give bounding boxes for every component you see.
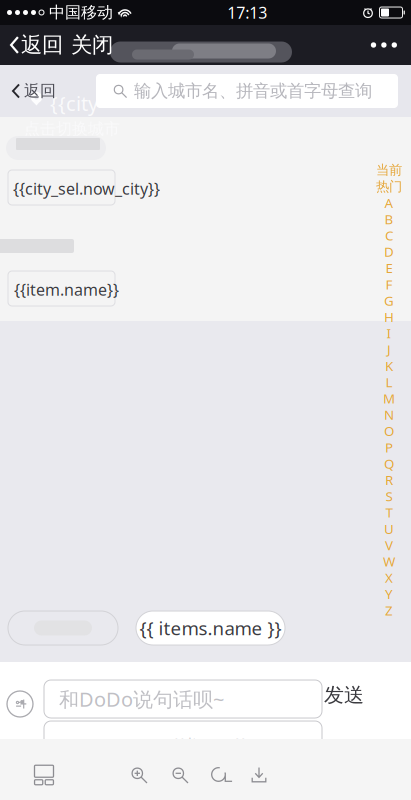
- staticText: 中国移动: [49, 3, 113, 22]
- staticText: 17:13: [227, 2, 267, 23]
- staticText: {{city: [50, 90, 98, 117]
- staticText: U: [384, 520, 394, 538]
- staticText: V: [385, 536, 393, 554]
- staticText: 输入城市名、拼音或首字母查询: [134, 80, 372, 102]
- staticText: 关闭: [71, 32, 113, 58]
- staticText: {{ item.n }}: [172, 733, 248, 752]
- staticText: L: [385, 373, 392, 391]
- staticText: W: [383, 552, 395, 570]
- staticText: H: [384, 308, 394, 326]
- staticText: Q: [384, 455, 394, 472]
- staticText: B: [384, 210, 393, 228]
- button[interactable]: 关闭: [63, 25, 113, 65]
- staticText: G: [384, 292, 394, 309]
- staticText: I: [386, 324, 391, 342]
- button[interactable]: Zoom out: [165, 760, 195, 790]
- staticText: Y: [385, 585, 393, 603]
- button[interactable]: Emoji: [6, 690, 34, 718]
- button[interactable]: {{ items.name }}: [136, 611, 285, 645]
- staticText: K: [385, 357, 393, 375]
- button[interactable]: Layout: [26, 757, 62, 793]
- staticText: {{item.name}}: [14, 279, 119, 300]
- button[interactable]: 返回: [0, 65, 56, 117]
- staticText: A: [384, 194, 393, 212]
- staticText: P: [385, 438, 393, 456]
- staticText: 返回: [24, 81, 56, 101]
- staticText: 热门: [376, 178, 402, 195]
- button[interactable]: Download: [244, 760, 274, 790]
- staticText: F: [385, 275, 392, 293]
- staticText: E: [385, 259, 392, 277]
- staticText: T: [385, 504, 392, 521]
- staticText: 当前: [376, 162, 402, 178]
- button[interactable]: More: [357, 25, 411, 65]
- staticText: 发送: [324, 683, 364, 707]
- staticText: 返回: [21, 32, 63, 58]
- staticText: N: [384, 406, 394, 423]
- button[interactable]: Zoom in: [124, 760, 154, 790]
- staticText: O: [384, 422, 394, 440]
- staticText: C: [385, 226, 393, 244]
- button[interactable]: 返回: [0, 25, 63, 65]
- staticText: 和DoDo说句话呗~: [59, 686, 224, 712]
- staticText: S: [385, 487, 392, 505]
- staticText: X: [385, 569, 393, 586]
- staticText: M: [383, 389, 395, 407]
- staticText: {{ items.name }}: [139, 616, 281, 640]
- staticText: D: [384, 243, 394, 260]
- staticText: R: [385, 471, 393, 489]
- button[interactable]: [8, 611, 118, 645]
- button[interactable]: 发送: [324, 676, 364, 714]
- staticText: 点击切换城市: [24, 119, 120, 139]
- button[interactable]: Rotate: [204, 760, 234, 790]
- staticText: J: [387, 341, 391, 358]
- staticText: Z: [385, 601, 393, 619]
- staticText: {{city_sel.now_city}}: [13, 178, 160, 199]
